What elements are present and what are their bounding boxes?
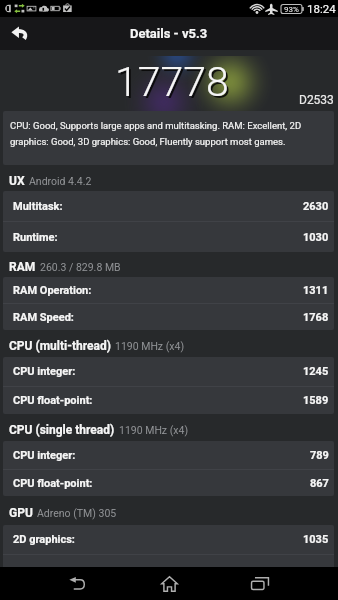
staticText: D2533 (299, 93, 334, 107)
staticText: 1190 MHz (x4) (115, 340, 185, 352)
button[interactable]: Multitask: (3, 191, 334, 221)
staticText: CPU (single thread) (9, 423, 115, 437)
button[interactable]: RAM Operation: (3, 277, 334, 303)
button[interactable]: Recent apps (225, 567, 295, 600)
button[interactable]: CPU integer: (3, 441, 334, 469)
staticText: 1311 (303, 284, 329, 297)
staticText: 2630 (303, 200, 329, 213)
staticText: 1245 (303, 365, 329, 378)
button[interactable]: Home (134, 567, 204, 600)
staticText: Android 4.4.2 (29, 175, 92, 187)
staticText: 789 (310, 449, 329, 462)
button[interactable]: 3D graphics: (3, 555, 334, 600)
button[interactable]: Back (0, 17, 40, 50)
staticText: 2D graphics: (13, 533, 75, 546)
staticText: RAM Speed: (13, 311, 74, 324)
button[interactable]: CPU: Good, Supports large apps and multi… (3, 111, 334, 165)
staticText: UX (9, 174, 25, 188)
staticText: RAM Operation: (13, 284, 92, 297)
staticText: 93% (284, 5, 299, 14)
staticText: 867 (310, 477, 329, 490)
staticText: Details - v5.3 (130, 26, 208, 41)
staticText: 18:24 (307, 2, 336, 15)
button[interactable]: CPU float-point: (3, 470, 334, 496)
staticText: 1035 (303, 533, 329, 546)
staticText: 3D graphics: (13, 571, 75, 584)
button[interactable]: CPU float-point: (3, 387, 334, 414)
staticText: 1768 (303, 311, 329, 324)
button[interactable]: 2D graphics: (3, 525, 334, 554)
staticText: 17778 (117, 60, 231, 108)
staticText: Adreno (TM) 305 (37, 507, 117, 519)
staticText: CPU (multi-thread) (9, 339, 111, 353)
staticText: Runtime: (13, 231, 58, 244)
button[interactable]: Runtime: (3, 222, 334, 252)
staticText: CPU integer: (13, 449, 76, 462)
button[interactable]: CPU integer: (3, 357, 334, 386)
staticText: CPU: Good, Supports large apps and multi… (10, 120, 328, 148)
staticText: 1030 (303, 231, 329, 244)
staticText: Multitask: (13, 200, 63, 213)
button[interactable]: RAM Speed: (3, 304, 334, 330)
staticText: CPU float-point: (13, 477, 93, 490)
staticText: 17778 (115, 58, 229, 106)
staticText: 260.3 / 829.8 MB (40, 261, 121, 273)
staticText: CPU integer: (13, 365, 76, 378)
button[interactable]: Back (42, 567, 112, 600)
staticText: CPU float-point: (13, 394, 93, 407)
staticText: 1190 MHz (x4) (119, 424, 189, 436)
staticText: RAM (9, 260, 36, 274)
staticText: 1589 (303, 394, 329, 407)
staticText: GPU (9, 506, 33, 520)
